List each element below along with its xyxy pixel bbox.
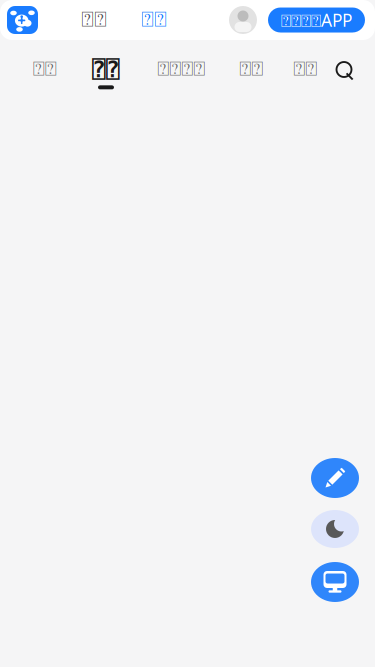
staticText: ⍰⍰⍰⍰APP <box>281 8 352 31</box>
staticText: ⍰⍰ <box>293 60 317 79</box>
button[interactable]: ⍰⍰ <box>81 10 107 30</box>
staticText: ⍰⍰ <box>92 57 120 82</box>
button[interactable]: Night mode <box>311 510 359 548</box>
button[interactable]: ⍰⍰ <box>239 60 263 86</box>
button[interactable]: Compose <box>311 458 359 498</box>
button[interactable]: Home <box>7 6 38 34</box>
button[interactable]: Search <box>336 63 355 82</box>
staticText: ⍰⍰ <box>141 10 167 30</box>
staticText: ⍰⍰ <box>81 10 107 30</box>
button[interactable]: Account <box>229 6 257 34</box>
button[interactable]: ⍰⍰⍰⍰ <box>157 60 205 86</box>
button[interactable]: ⍰⍰ <box>293 60 317 86</box>
button[interactable]: Desktop version <box>311 562 359 602</box>
button[interactable]: ⍰⍰ <box>32 60 56 86</box>
staticText: ⍰⍰⍰⍰ <box>157 60 205 79</box>
button[interactable]: ⍰⍰ <box>141 10 167 30</box>
staticText: ⍰⍰ <box>32 60 56 79</box>
staticText: ⍰⍰ <box>239 60 263 79</box>
button[interactable]: ⍰⍰⍰⍰APP <box>268 7 365 32</box>
button[interactable]: ⍰⍰ <box>92 57 120 89</box>
